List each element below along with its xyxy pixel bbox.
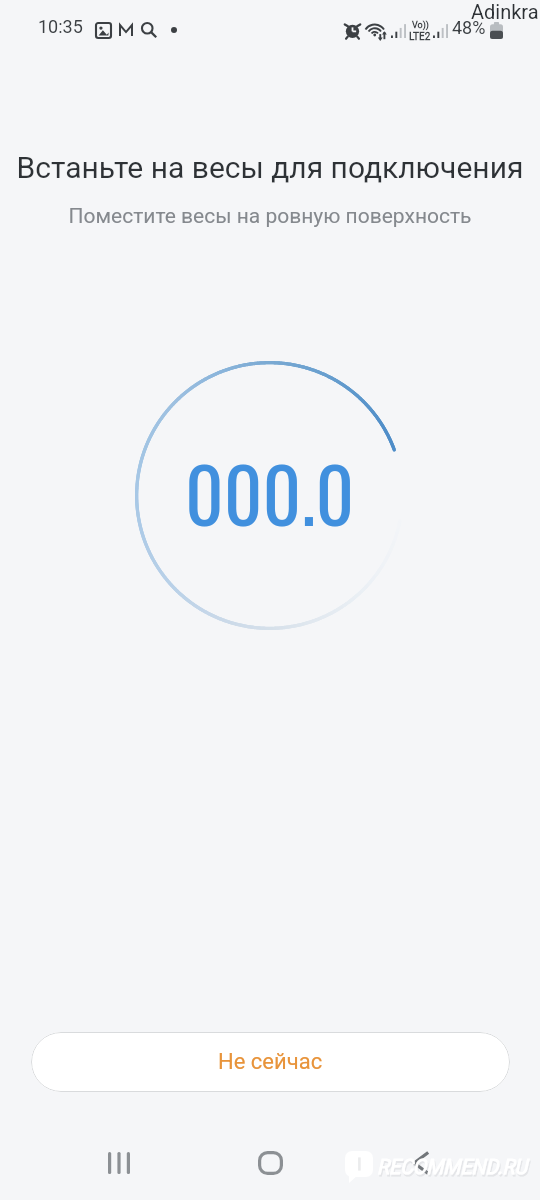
staticText: RECOMMEND.RU <box>377 1155 528 1180</box>
button[interactable]: Back <box>391 1133 451 1193</box>
button[interactable]: Не сейчас <box>31 1032 510 1092</box>
staticText: Не сейчас <box>218 1049 323 1075</box>
staticText: I <box>357 1154 362 1174</box>
staticText: Vo)) <box>412 20 429 31</box>
staticText: 10:35 <box>38 16 83 37</box>
staticText: 000.0 <box>185 437 355 548</box>
staticText: RECOMMEND.RU <box>378 1157 529 1182</box>
staticText: Adinkra <box>471 0 539 23</box>
button[interactable]: Home <box>240 1133 300 1193</box>
staticText: LTE2 <box>409 31 431 43</box>
staticText: Поместите весы на ровную поверхность <box>0 204 540 229</box>
staticText: 48% <box>452 17 486 38</box>
button[interactable]: Recent apps <box>89 1133 149 1193</box>
staticText: Встаньте на весы для подключения <box>0 150 540 185</box>
